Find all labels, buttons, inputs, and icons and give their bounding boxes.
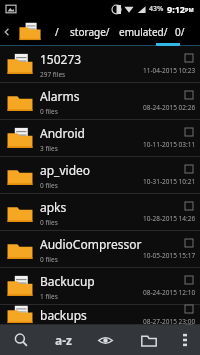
button[interactable]: Current folder — [14, 17, 46, 46]
button[interactable]: Select apks — [185, 202, 193, 210]
staticText: 297 files — [40, 70, 66, 79]
staticText: 10-05-2015 15:17 — [143, 251, 196, 260]
button[interactable]: Select Alarms — [185, 91, 193, 99]
staticText: PM — [185, 6, 194, 13]
button[interactable]: 0/ — [175, 25, 185, 39]
button[interactable]: apks — [0, 194, 200, 231]
button[interactable]: storage/ — [68, 25, 112, 39]
button[interactable]: Backucup — [0, 268, 200, 305]
button[interactable]: Alarms — [0, 83, 200, 120]
staticText: / — [55, 25, 59, 39]
button[interactable]: Android — [0, 120, 200, 157]
staticText: 10-31-2015 10:21 — [143, 177, 196, 186]
staticText: backups — [40, 307, 87, 323]
button[interactable]: Back — [0, 17, 14, 46]
staticText: Alarms — [40, 88, 80, 104]
staticText: 1 files — [40, 292, 58, 301]
staticText: Backucup — [40, 273, 95, 289]
staticText: 0/ — [175, 25, 185, 39]
button[interactable]: Search — [0, 325, 42, 355]
button[interactable]: New folder — [127, 325, 170, 355]
staticText: 3 files — [40, 144, 58, 153]
staticText: 9:12 — [167, 3, 185, 15]
staticText: 08-24-2015 12:10 — [143, 288, 196, 297]
button[interactable]: ap_video — [0, 157, 200, 194]
button[interactable]: Select ap_video — [185, 165, 193, 173]
staticText: 0 files — [40, 218, 58, 227]
staticText: 43% — [149, 4, 164, 14]
button[interactable]: backups — [0, 305, 200, 325]
button[interactable]: 150273 — [0, 46, 200, 83]
button[interactable]: emulated/ — [117, 25, 170, 39]
staticText: emulated/ — [119, 25, 168, 39]
staticText: storage/ — [70, 25, 110, 39]
button[interactable]: Select Backucup — [185, 276, 193, 284]
staticText: 11-04-2015 10:23 — [143, 66, 196, 75]
button[interactable]: Select backups — [185, 305, 193, 313]
staticText: 10-28-2015 14:26 — [143, 214, 196, 223]
staticText: 08-24-2015 02:26 — [143, 103, 196, 112]
staticText: apks — [40, 199, 67, 215]
staticText: 0 files — [40, 255, 58, 264]
staticText: AudioCompressor — [40, 236, 142, 252]
staticText: 0 files — [40, 181, 58, 190]
button[interactable]: More options — [170, 325, 200, 355]
button[interactable]: AudioCompressor — [0, 231, 200, 268]
button[interactable]: Select Android — [185, 128, 193, 136]
button[interactable]: Select AudioCompressor — [185, 239, 193, 247]
staticText: 150273 — [40, 51, 82, 67]
button[interactable]: Select 150273 — [185, 54, 193, 62]
button[interactable]: / — [52, 25, 62, 39]
button[interactable]: Show hidden files — [84, 325, 127, 355]
staticText: ap_video — [40, 162, 91, 178]
staticText: Android — [40, 125, 85, 141]
button[interactable]: Sort A to Z — [42, 325, 84, 355]
staticText: 08-27-2015 23:00 — [143, 317, 196, 324]
staticText: a-z — [55, 332, 72, 348]
staticText: 10-11-2015 03:11 — [143, 140, 196, 149]
staticText: 0 files — [40, 107, 58, 116]
